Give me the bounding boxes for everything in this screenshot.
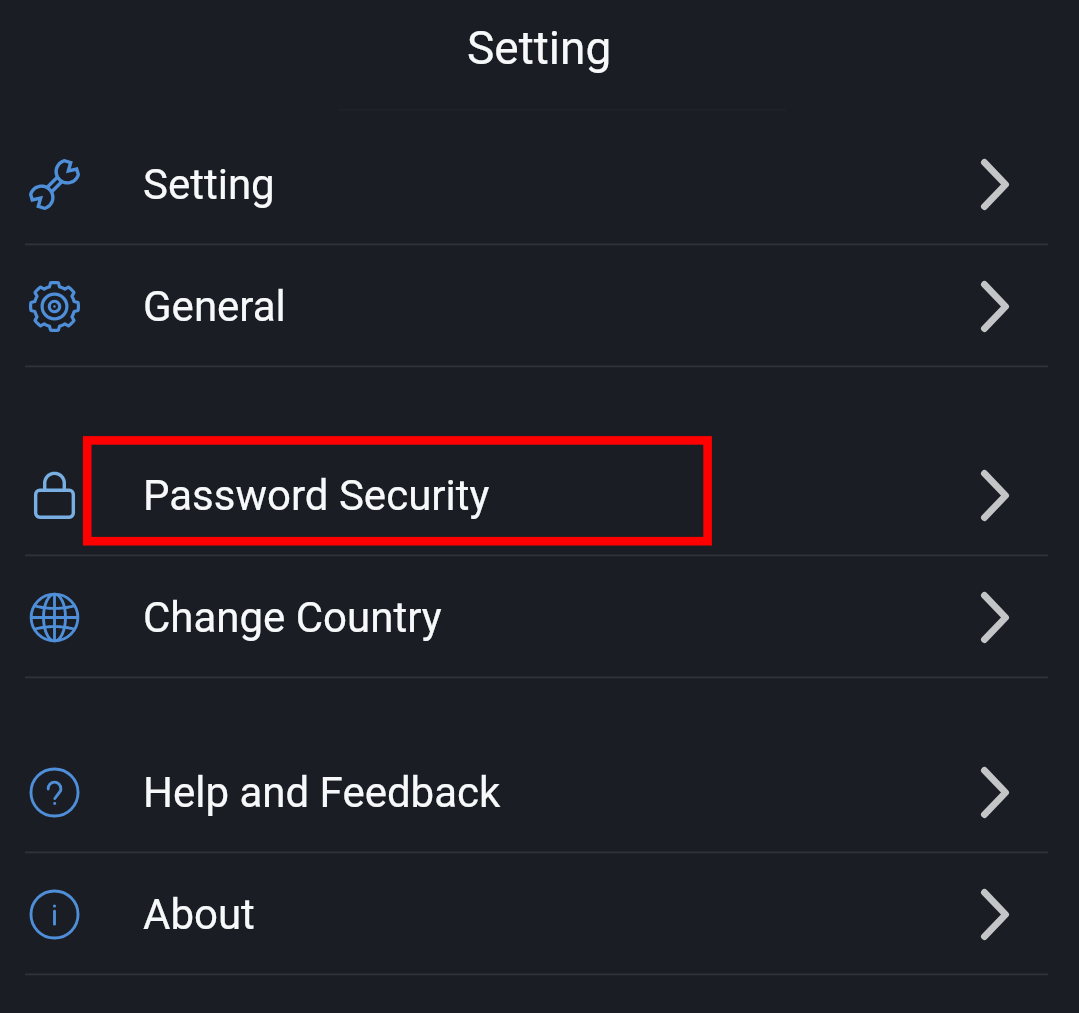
button[interactable]: About <box>0 853 1079 975</box>
staticText: Change Country <box>143 593 442 642</box>
button[interactable]: General <box>0 245 1079 367</box>
staticText: Setting <box>467 21 612 75</box>
button[interactable]: Setting <box>0 123 1079 245</box>
staticText: Password Security <box>143 471 490 520</box>
button[interactable]: Change Country <box>0 556 1079 678</box>
staticText: General <box>143 282 286 331</box>
staticText: Help and Feedback <box>143 768 501 817</box>
staticText: Setting <box>143 160 275 209</box>
button[interactable]: Help and Feedback <box>0 731 1079 853</box>
button[interactable]: Password Security <box>0 434 1079 556</box>
staticText: About <box>143 890 255 939</box>
